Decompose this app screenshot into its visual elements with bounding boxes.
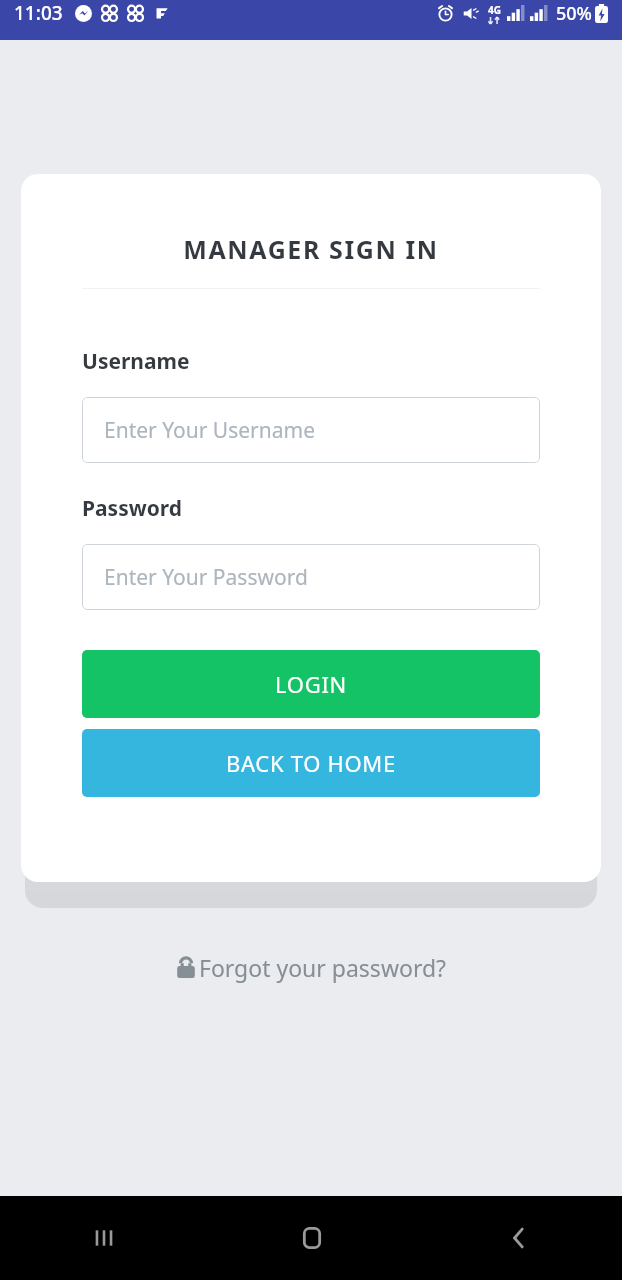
button[interactable]: Forgot your password? [166, 946, 457, 989]
staticText: BACK TO HOME [226, 748, 396, 778]
button[interactable]: Enter Your Password [82, 544, 540, 610]
button[interactable]: BACK TO HOME [82, 729, 540, 797]
staticText: 50% [556, 1, 592, 26]
staticText: 4G [488, 3, 501, 17]
staticText: LOGIN [275, 669, 347, 699]
staticText: Username [82, 347, 190, 376]
staticText: Password [82, 494, 183, 523]
staticText: Forgot your password? [199, 952, 447, 983]
button[interactable]: Back [415, 1196, 622, 1280]
button[interactable]: Enter Your Username [82, 397, 540, 463]
staticText: MANAGER SIGN IN [82, 232, 540, 266]
staticText: Enter Your Username [104, 416, 316, 445]
button[interactable]: Recents [0, 1196, 208, 1280]
button[interactable]: LOGIN [82, 650, 540, 718]
button[interactable]: Home [208, 1196, 415, 1280]
staticText: 11:03 [14, 0, 63, 26]
staticText: Enter Your Password [104, 563, 308, 592]
